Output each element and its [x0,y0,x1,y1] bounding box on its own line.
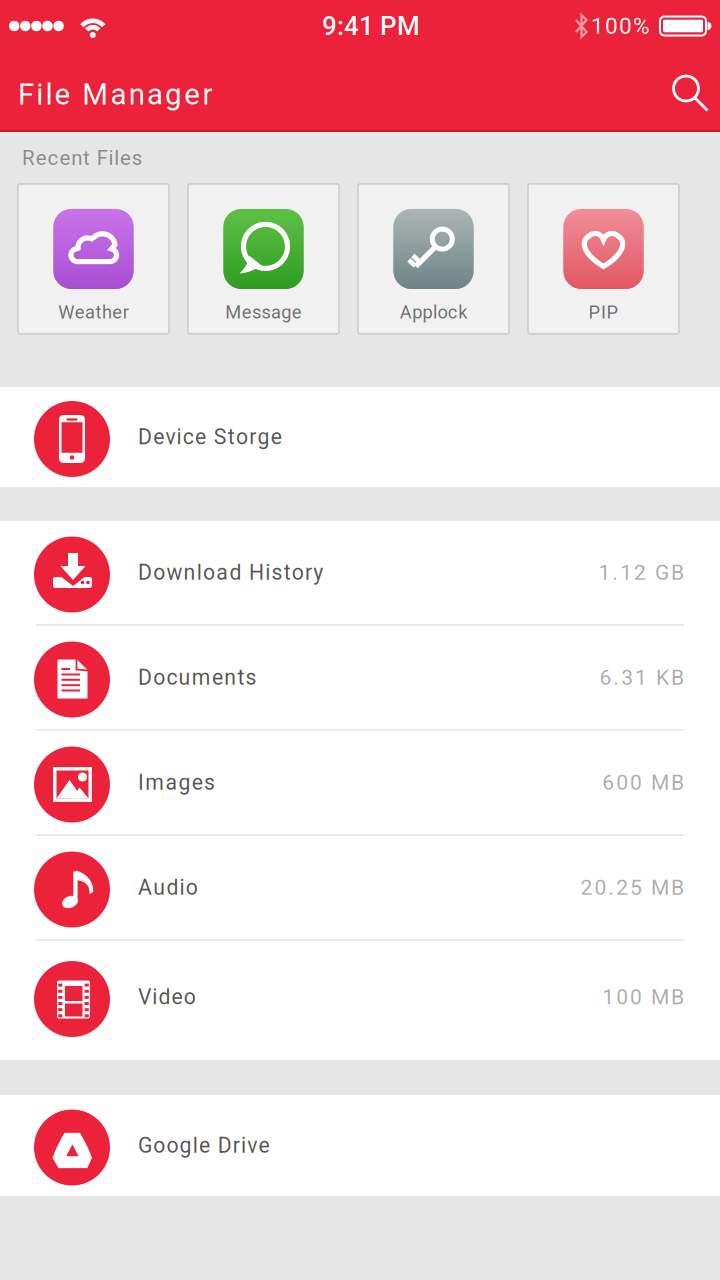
staticText: i [36,77,43,112]
staticText: A [400,301,412,323]
staticText: g [257,425,269,449]
staticText: t [95,301,101,323]
staticText: s [132,146,143,170]
staticText: e [199,1133,210,1158]
staticText: g [180,1133,192,1158]
staticText: r [249,425,256,449]
staticText: o [166,1133,178,1158]
staticText: s [271,560,282,585]
staticText: t [237,665,244,690]
staticText: B [671,985,684,1009]
staticText: d [158,985,170,1009]
staticText: i [152,985,157,1009]
staticText: 0 [616,770,628,795]
staticText: 2 [580,875,592,900]
staticText: e [271,425,282,449]
button[interactable]: W [18,184,169,334]
staticText: F [18,77,34,112]
staticText: e [172,985,183,1009]
staticText: r [123,301,129,323]
staticText: o [437,301,447,323]
staticText: R [22,146,35,170]
staticText: g [165,77,182,112]
staticText: D [218,1133,232,1158]
staticText: o [292,560,304,585]
staticText: l [433,301,437,323]
staticText: 5 [630,875,642,900]
button[interactable]: V [0,941,720,1053]
staticText: a [271,301,281,323]
staticText: t [228,425,235,449]
staticText: a [110,77,126,112]
button[interactable]: D [0,521,720,624]
staticText: 0 [619,13,632,39]
staticText: o [203,560,215,585]
staticText: a [85,301,95,323]
staticText: e [212,665,223,690]
staticText: r [233,1133,240,1158]
staticText: n [129,77,145,112]
staticText: u [153,875,165,900]
staticText: i [265,560,270,585]
staticText: m [192,665,211,690]
staticText: 2 [634,560,646,585]
staticText: o [153,560,165,585]
staticText: y [313,560,323,585]
staticText: e [192,770,203,795]
staticText: e [112,301,122,323]
staticText: 1 [635,665,647,690]
staticText: D [138,665,152,690]
staticText: e [258,1133,269,1158]
staticText: t [83,146,90,170]
button[interactable]: Search [668,72,712,116]
staticText: e [75,301,85,323]
staticText: n [71,146,82,170]
staticText: v [247,1133,257,1158]
staticText: o [153,665,165,690]
staticText: e [55,77,71,112]
staticText: i [108,146,113,170]
staticText: M [651,985,669,1009]
staticText: . [608,875,614,900]
button[interactable]: M [188,184,339,334]
staticText: w [166,560,182,585]
staticText: 0 [605,13,618,39]
staticText: a [216,560,228,585]
staticText: K [656,665,669,690]
button[interactable]: A [358,184,509,334]
staticText: e [184,77,200,112]
staticText: B [671,560,684,585]
button[interactable]: D [0,387,720,487]
staticText: I [601,301,606,323]
button[interactable]: P [528,184,679,334]
staticText: h [102,301,112,323]
staticText: 0 [630,770,642,795]
staticText: d [166,875,178,900]
staticText: d [229,560,241,585]
staticText: G [655,560,669,585]
staticText: . [612,560,618,585]
button[interactable]: A [0,836,720,939]
staticText: e [36,146,47,170]
staticText: V [138,985,151,1009]
staticText: p [412,301,422,323]
staticText: s [246,665,257,690]
staticText: D [138,560,152,585]
staticText: % [633,13,650,39]
staticText: F [97,146,108,170]
button[interactable]: I [0,731,720,834]
staticText: 6 [602,770,614,795]
staticText: B [671,665,684,690]
staticText: a [147,77,163,112]
staticText: 0 [630,985,642,1009]
staticText: n [224,665,236,690]
staticText: r [202,77,212,112]
staticText: e [59,146,70,170]
staticText: t [284,560,291,585]
staticText: 2 [616,875,628,900]
staticText: l [114,146,119,170]
staticText: i [241,1133,246,1158]
button[interactable]: G [0,1095,720,1196]
staticText: . [613,665,619,690]
button[interactable]: D [0,626,720,729]
